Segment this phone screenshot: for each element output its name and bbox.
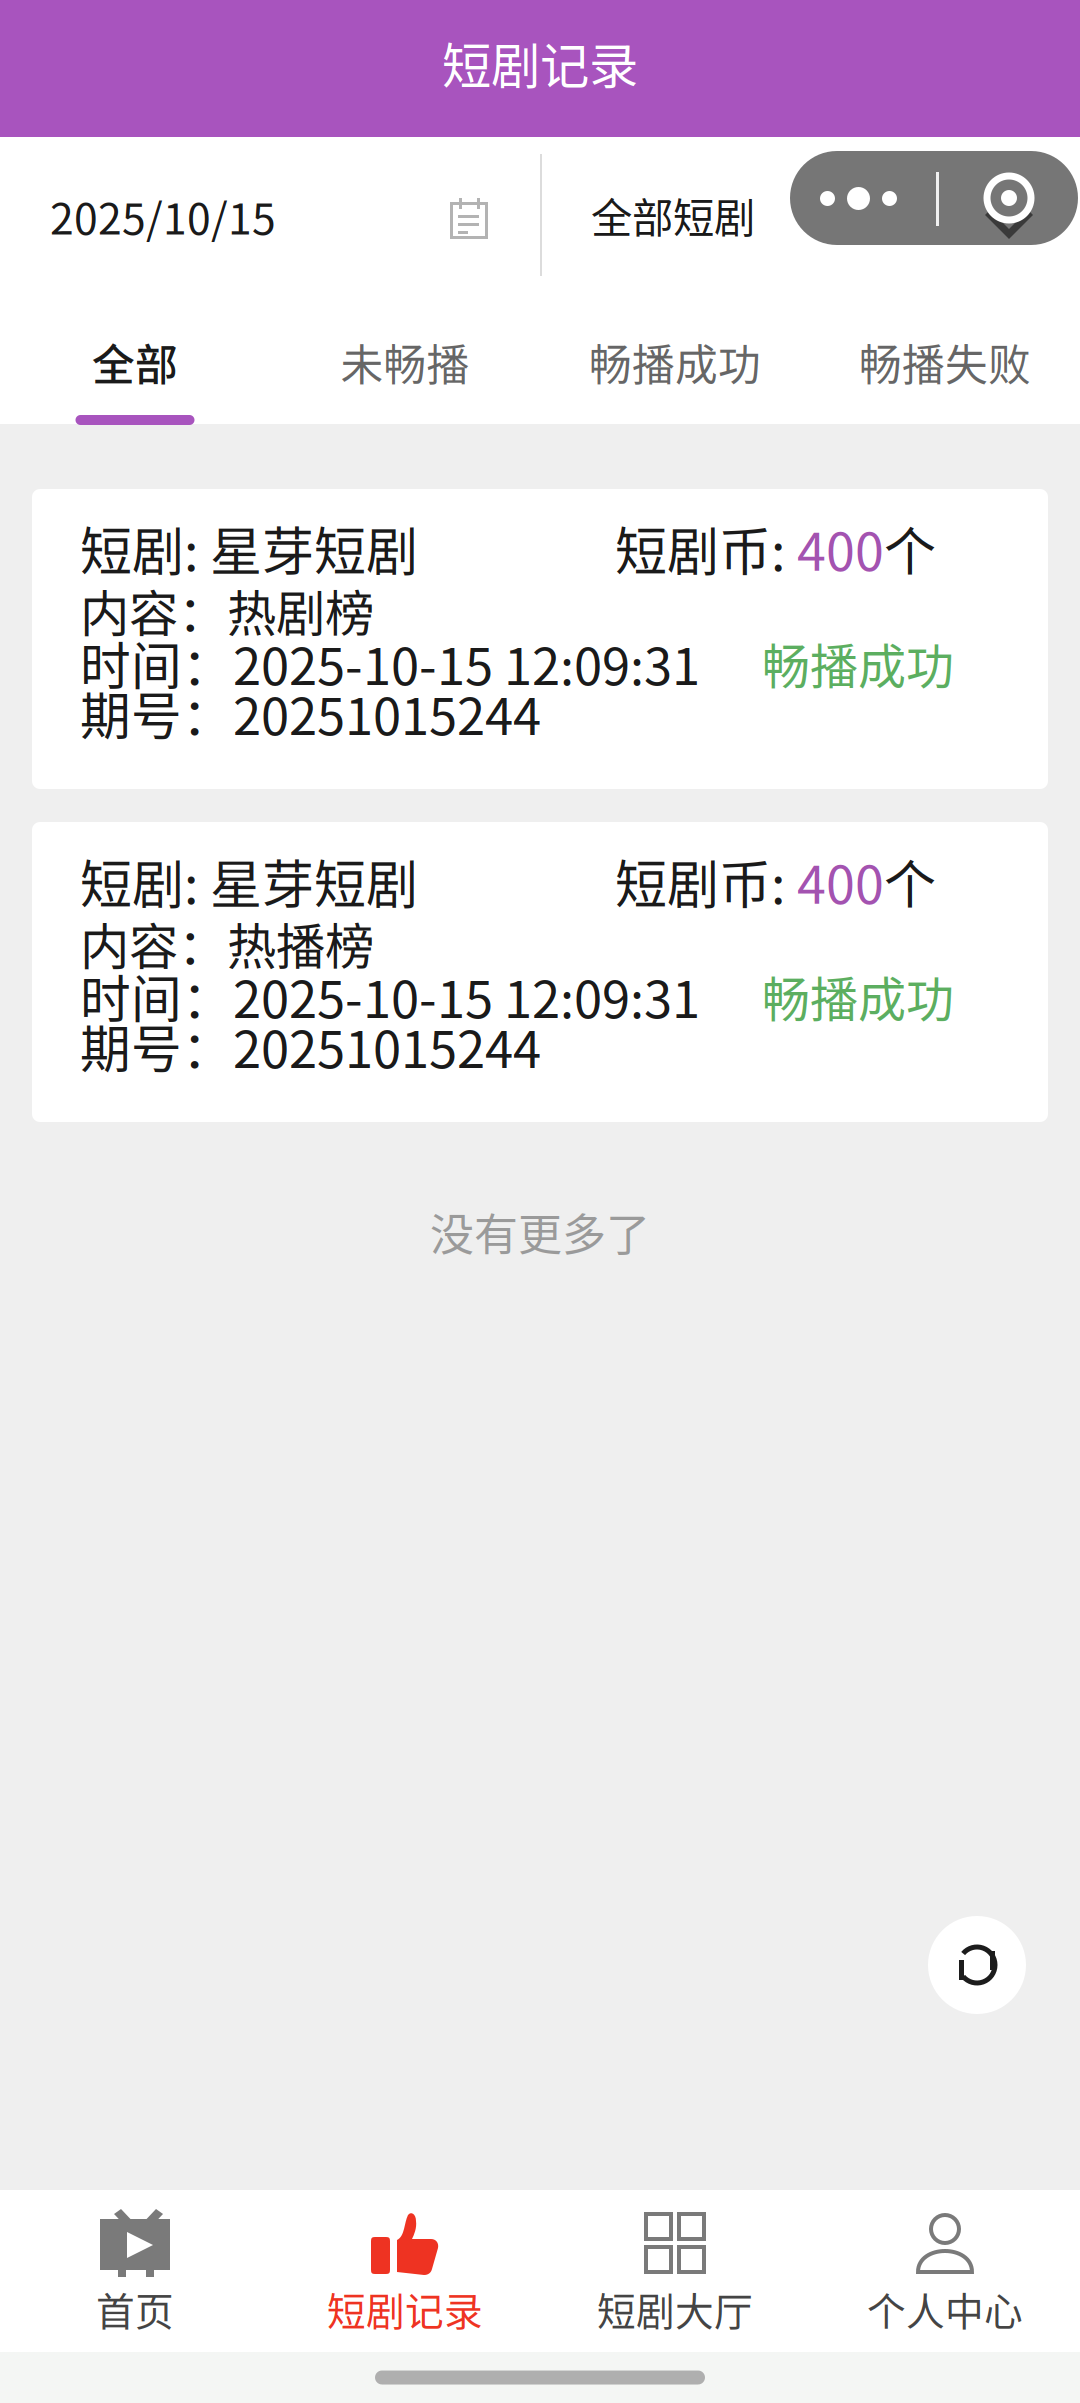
button[interactable]: 畅播成功 (540, 290, 810, 427)
staticText: 2025/10/15 (50, 185, 276, 247)
staticText: 个 (884, 843, 936, 919)
staticText: 时间：2025-10-15 12:09:31 (80, 626, 700, 700)
staticText: 短剧币: (615, 510, 797, 586)
button[interactable]: 短剧记录 (270, 2190, 540, 2352)
button[interactable]: 畅播失败 (810, 290, 1080, 427)
staticText: 畅播失败 (859, 331, 1031, 393)
button[interactable]: 短剧大厅 (540, 2190, 810, 2352)
staticText: 首页 (96, 2281, 174, 2337)
button[interactable]: 刷新 (928, 1916, 1026, 2014)
staticText: 未畅播 (340, 331, 469, 393)
staticText: 短剧大厅 (597, 2281, 753, 2337)
staticText: 畅播成功 (762, 961, 954, 1031)
staticText: 全部短剧 (591, 185, 755, 245)
staticText: 畅播成功 (762, 628, 954, 698)
staticText: 个 (884, 510, 936, 586)
staticText: 内容：热播榜 (80, 907, 374, 979)
staticText: 没有更多了 (430, 1200, 650, 1264)
button[interactable]: 未畅播 (270, 290, 540, 427)
staticText: 个人中心 (867, 2281, 1023, 2337)
button[interactable]: 短剧: 星芽短剧 (32, 489, 1048, 789)
button[interactable]: 首页 (0, 2190, 270, 2352)
button[interactable]: 全部 (0, 290, 270, 427)
staticText: 全部 (92, 331, 178, 393)
staticText: 短剧: 星芽短剧 (80, 843, 418, 919)
staticText: 400 (797, 510, 884, 586)
button[interactable]: 2025/10/15 (0, 137, 540, 293)
staticText: 内容：热剧榜 (80, 574, 374, 646)
staticText: 短剧: 星芽短剧 (80, 510, 418, 586)
staticText: 400 (797, 843, 884, 919)
staticText: 短剧记录 (442, 27, 638, 98)
staticText: 期号：20251015244 (80, 1009, 541, 1083)
button[interactable]: 全部短剧 (558, 137, 788, 293)
staticText: 期号：20251015244 (80, 676, 541, 750)
staticText: 短剧币: (615, 843, 797, 919)
button[interactable]: 短剧: 星芽短剧 (32, 822, 1048, 1122)
staticText: 短剧记录 (327, 2281, 483, 2337)
staticText: 畅播成功 (589, 331, 761, 393)
button[interactable]: 个人中心 (810, 2190, 1080, 2352)
staticText: 时间：2025-10-15 12:09:31 (80, 959, 700, 1033)
